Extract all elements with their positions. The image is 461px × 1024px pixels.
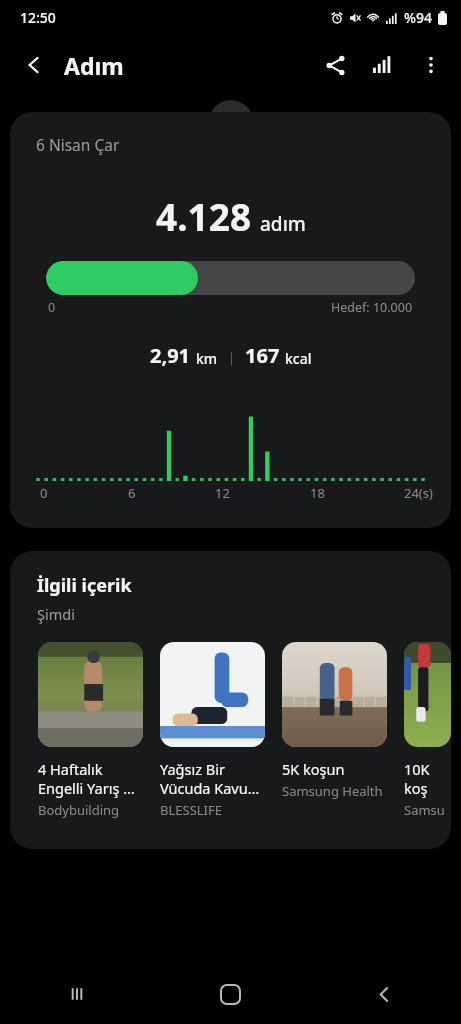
staticText: 10K koş — [404, 759, 451, 798]
staticText: Şimdi — [37, 604, 75, 624]
staticText: Yağsız Bir Vücuda Kavu… — [160, 759, 260, 798]
staticText: 6 — [128, 484, 136, 502]
button[interactable]: 10K koş — [404, 642, 451, 819]
staticText: 5K koşun — [282, 759, 345, 779]
staticText: %94 — [404, 8, 432, 27]
staticText: 24(s) — [404, 484, 433, 502]
staticText: 12 — [215, 484, 230, 502]
button[interactable]: Recents — [0, 964, 153, 1024]
staticText: Bodybuilding — [38, 801, 120, 819]
staticText: İlgili içerik — [37, 573, 132, 598]
button[interactable]: Back — [307, 964, 461, 1024]
staticText: km — [196, 349, 218, 368]
staticText: Samsung Health — [282, 782, 383, 800]
staticText: 4 Haftalık Engelli Yarış … — [38, 759, 135, 798]
button[interactable]: 6 Nisan Çar — [10, 112, 451, 528]
staticText: adım — [260, 211, 306, 237]
button[interactable]: More options — [407, 41, 455, 89]
staticText: Samsung — [404, 801, 451, 819]
staticText: BLESSLIFE — [160, 801, 222, 819]
staticText: 0 — [40, 484, 48, 502]
staticText: 6 Nisan Çar — [36, 134, 120, 155]
staticText: 4.128 — [156, 191, 252, 241]
staticText: Adım — [64, 50, 124, 81]
staticText: kcal — [285, 349, 312, 368]
staticText: 2,91 — [150, 342, 191, 369]
button[interactable]: 4 Haftalık Engelli Yarış … — [38, 642, 143, 819]
staticText: 18 — [310, 484, 325, 502]
staticText: 0 — [48, 299, 56, 316]
button[interactable]: Back — [10, 41, 58, 89]
button[interactable]: Home — [153, 964, 307, 1024]
staticText: Hedef: 10.000 — [331, 299, 413, 316]
button[interactable]: Statistics — [359, 41, 407, 89]
staticText: 167 — [245, 342, 280, 369]
staticText: 12:50 — [20, 8, 56, 27]
button[interactable]: Share — [311, 41, 359, 89]
button[interactable]: 5K koşun — [282, 642, 387, 800]
button[interactable]: Yağsız Bir Vücuda Kavu… — [160, 642, 265, 819]
